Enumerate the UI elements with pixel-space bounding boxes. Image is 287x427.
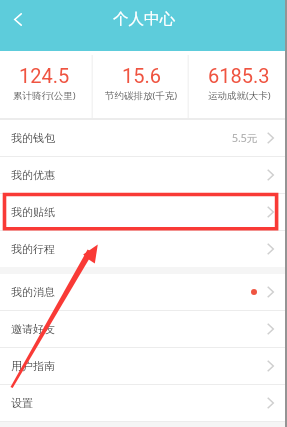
staticText: 邀请好友 xyxy=(11,322,55,336)
staticText: 5.5元 xyxy=(232,131,258,145)
button[interactable]: 我的钱包 xyxy=(0,120,287,157)
staticText: 6185.3 xyxy=(208,64,270,87)
staticText: 15.6 xyxy=(122,64,161,87)
staticText: 用户指南 xyxy=(11,359,55,373)
button[interactable]: 设置 xyxy=(0,385,287,422)
staticText: 节约碳排放(千克) xyxy=(105,89,178,102)
staticText: 个人中心 xyxy=(113,9,175,29)
button[interactable]: 我的贴纸 xyxy=(0,194,287,231)
staticText: 我的优惠 xyxy=(11,168,55,182)
button[interactable]: 我的优惠 xyxy=(0,157,287,194)
staticText: 运动成就(大卡) xyxy=(208,89,271,102)
staticText: 我的行程 xyxy=(11,242,55,256)
button[interactable]: 我的消息 xyxy=(0,274,287,311)
button[interactable]: 我的行程 xyxy=(0,231,287,267)
button[interactable]: 邀请好友 xyxy=(0,311,287,348)
button[interactable]: 用户指南 xyxy=(0,348,287,385)
staticText: 我的消息 xyxy=(11,285,55,299)
staticText: 累计骑行(公里) xyxy=(13,89,76,102)
button[interactable]: Back xyxy=(3,4,33,34)
staticText: 我的钱包 xyxy=(11,131,55,145)
staticText: 设置 xyxy=(11,396,33,410)
staticText: 124.5 xyxy=(19,64,70,87)
staticText: 我的贴纸 xyxy=(11,205,55,219)
